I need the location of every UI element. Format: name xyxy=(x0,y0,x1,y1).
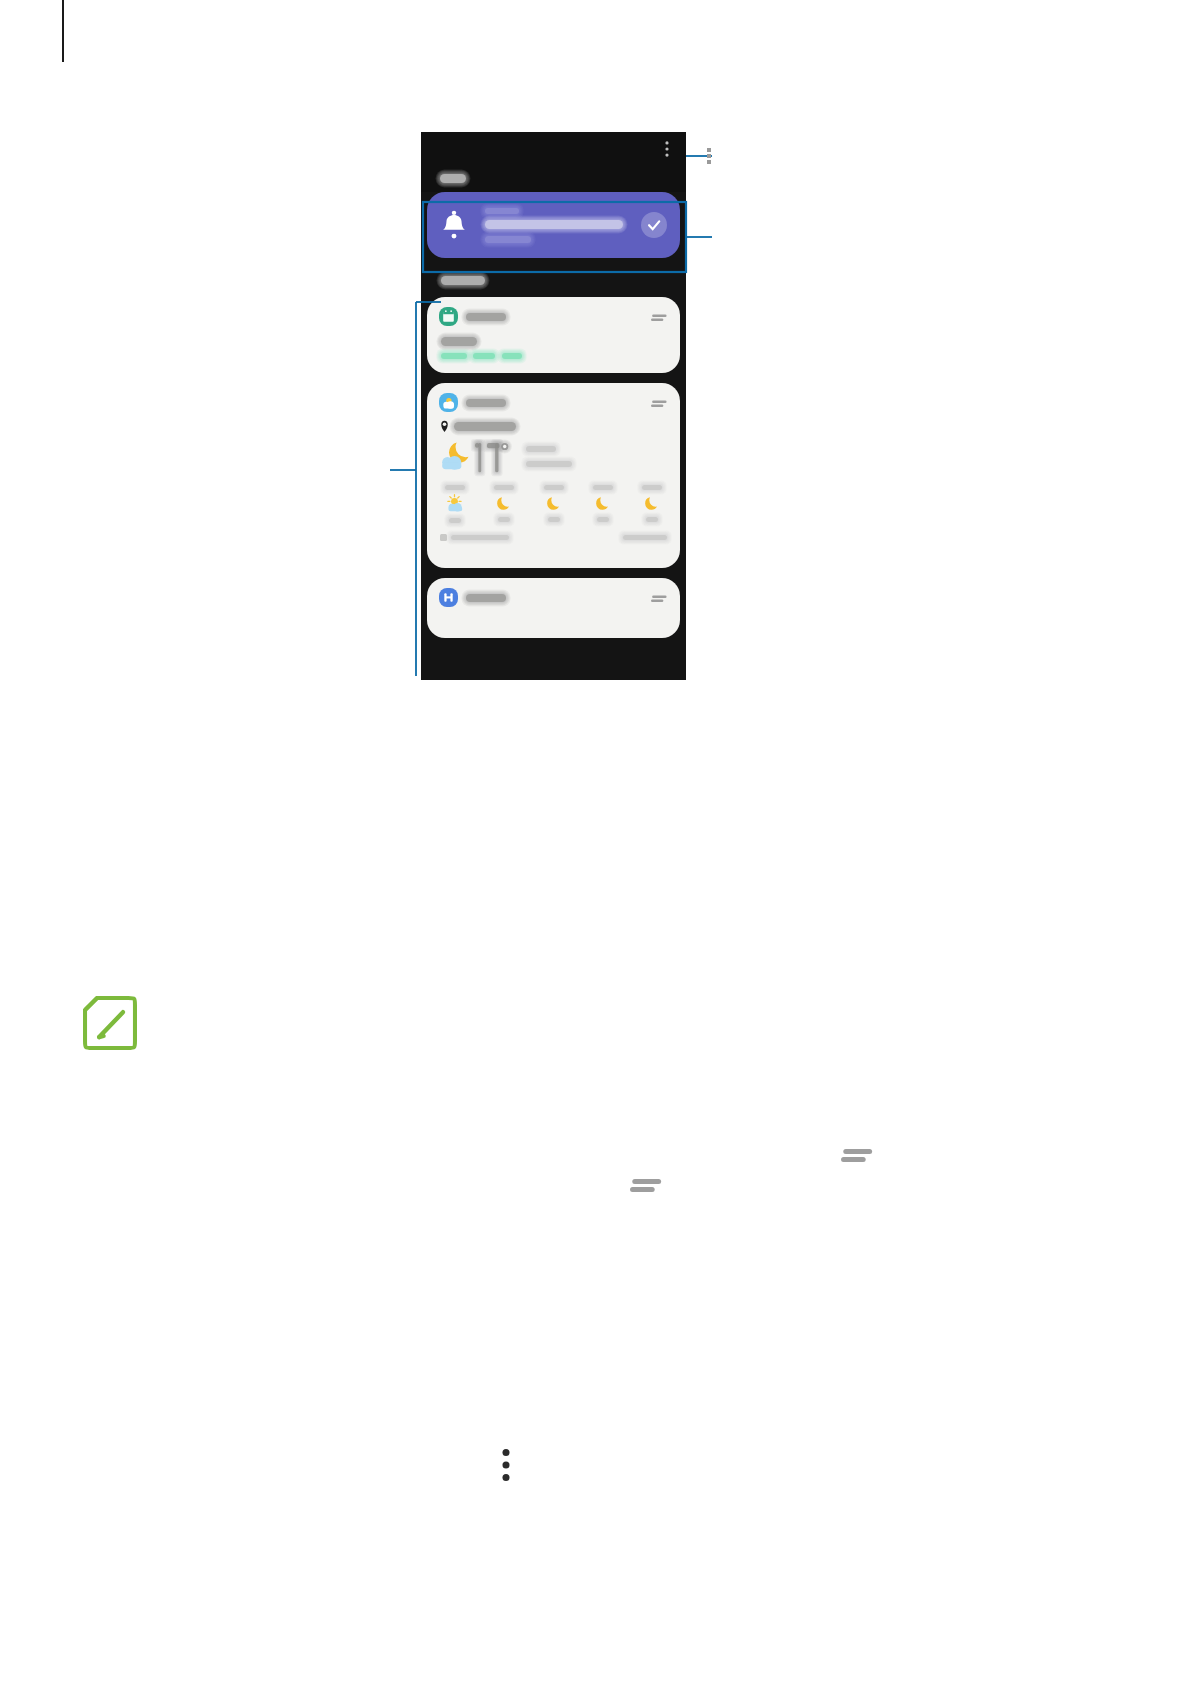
button[interactable]: Card options xyxy=(649,590,669,606)
button[interactable]: Card options xyxy=(427,383,680,568)
button[interactable]: Card options xyxy=(427,297,680,373)
button[interactable]: Card options xyxy=(649,309,669,325)
button[interactable]: Card options xyxy=(427,578,680,638)
button[interactable]: Card options xyxy=(649,395,669,411)
button[interactable]: More options xyxy=(654,136,680,162)
button[interactable]: More options xyxy=(498,1448,514,1482)
button[interactable]: Mark as complete xyxy=(427,192,680,258)
button[interactable]: Mark as complete xyxy=(640,211,668,239)
